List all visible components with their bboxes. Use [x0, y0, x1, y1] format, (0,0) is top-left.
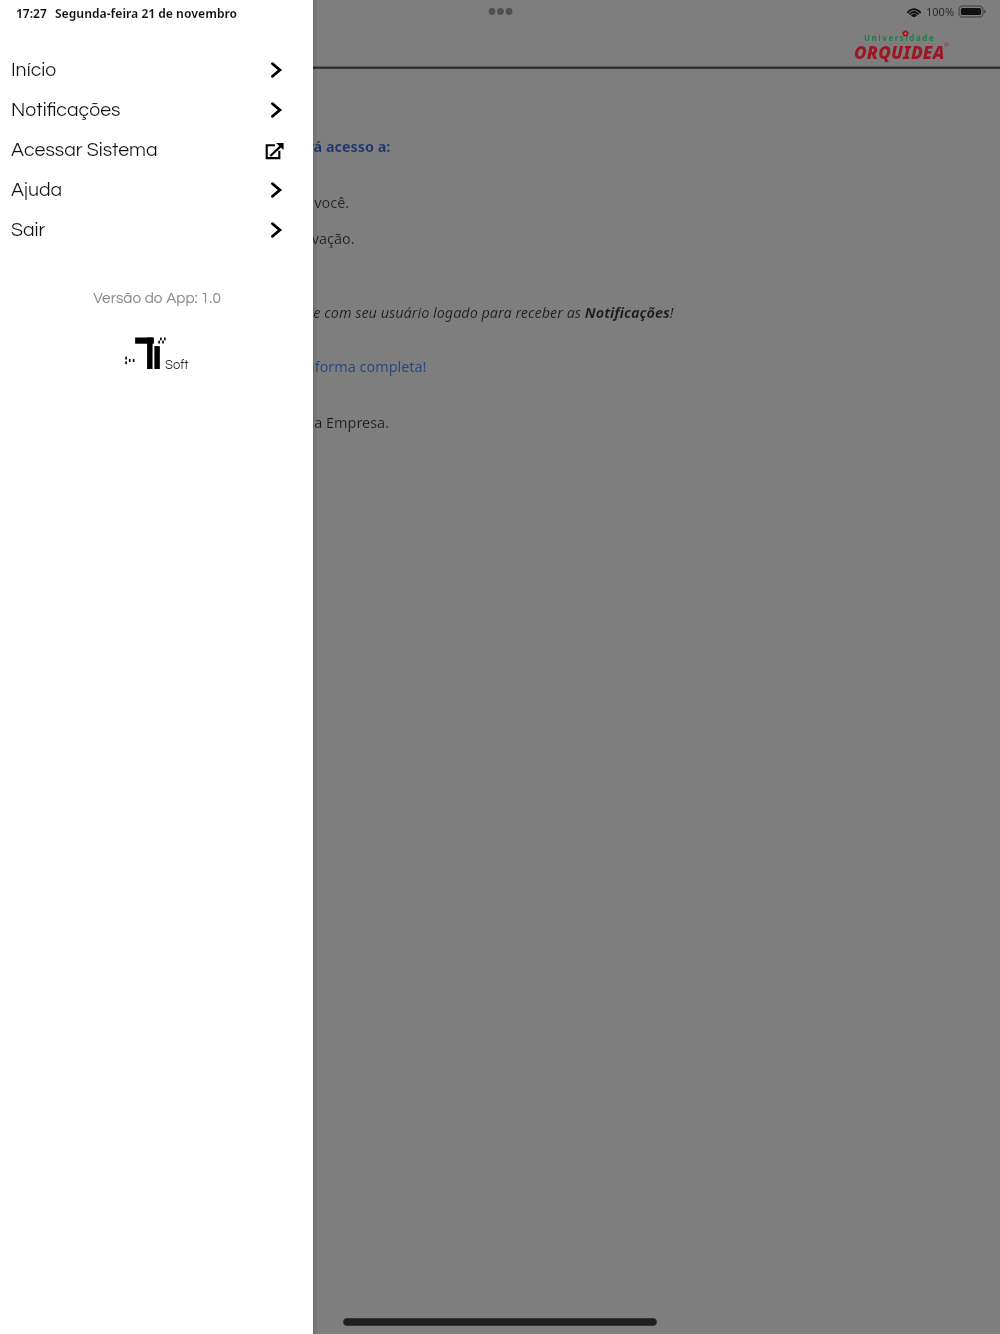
staticText: Com o aplicativo você terá acesso a: [133, 137, 391, 157]
staticText: ® [944, 41, 949, 49]
staticText: Notificações personalizadas para você. [88, 193, 350, 213]
other: Abrir sistema externo [266, 142, 284, 159]
staticText: Em caso de dúvidas procure o setor de TI… [24, 413, 390, 433]
staticText: Notificações [11, 100, 121, 120]
button[interactable]: Início [0, 50, 313, 90]
other: Ajuda [268, 182, 284, 198]
staticText: Acesse o sistema para plataforma complet… [128, 357, 427, 377]
staticText: Universidade [864, 32, 936, 43]
other: Sair [268, 222, 284, 238]
other: Notificações [268, 102, 284, 118]
button[interactable]: Notificações [0, 90, 313, 130]
other: Início [268, 62, 284, 78]
staticText: 100% [926, 4, 955, 19]
staticText: 17:27 [16, 5, 47, 21]
staticText: Informações do sistema em tempo de ativa… [34, 229, 355, 249]
staticText: Soft [165, 358, 189, 371]
button[interactable]: Acessar Sistema [0, 130, 313, 170]
staticText: Acessar Sistema [11, 140, 158, 160]
staticText: Segunda-feira 21 de novembro [55, 5, 238, 21]
button[interactable]: Ajuda [0, 170, 313, 210]
button[interactable]: Sair [0, 210, 313, 250]
staticText: Versão do App: 1.0 [93, 290, 221, 306]
staticText: Ajuda [11, 180, 63, 200]
staticText: Mantenha seu aplicativo aberto e com seu… [107, 303, 674, 323]
staticText: Sair [11, 220, 46, 240]
staticText: ORQUIDEA [854, 41, 945, 64]
staticText: Início [11, 60, 57, 80]
